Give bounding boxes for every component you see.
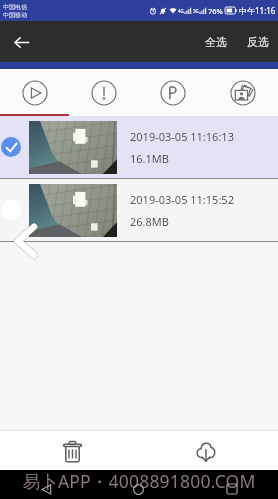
staticText: 2019-03-05 11:16:13 (130, 129, 234, 144)
staticText: 2019-03-05 11:15:52 (130, 192, 234, 207)
button[interactable]: 2019-03-05 11:15:52 (0, 179, 278, 241)
staticText: 16.1MB (130, 151, 169, 166)
staticText: 4G (178, 8, 184, 14)
button[interactable]: 2019-03-05 11:16:13 (0, 116, 278, 178)
staticText: 易卜APP・4008891800.COM (0, 469, 278, 493)
button[interactable]: Gallery (208, 69, 278, 116)
button[interactable]: Home (92, 479, 185, 499)
button[interactable]: Delete (0, 430, 139, 470)
button[interactable]: 反选 (241, 29, 275, 55)
staticText: 全选 (205, 35, 227, 49)
button[interactable]: 全选 (199, 29, 233, 55)
button[interactable]: Play (0, 69, 69, 116)
staticText: 3G (193, 8, 199, 14)
button[interactable]: Back (9, 30, 33, 54)
staticText: 26.8MB (130, 214, 169, 229)
button[interactable]: Back (0, 479, 92, 499)
staticText: 中国电信 (3, 3, 27, 11)
staticText: 中国移动 (3, 11, 27, 19)
button[interactable]: Alerts (69, 69, 138, 116)
staticText: 76% (208, 6, 223, 16)
button[interactable]: Parking (138, 69, 208, 116)
staticText: 反选 (247, 35, 269, 49)
button[interactable]: Recents (185, 479, 278, 499)
staticText: 中午11:16 (239, 5, 276, 16)
button[interactable]: Download (139, 430, 278, 470)
